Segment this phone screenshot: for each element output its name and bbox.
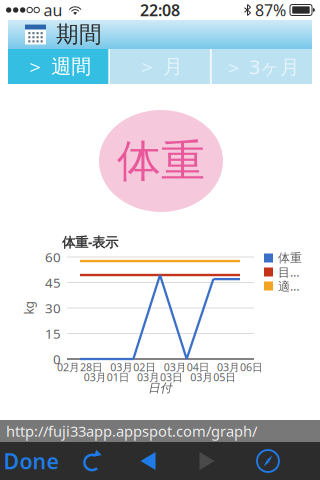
staticText: 03月03日 xyxy=(137,370,183,384)
staticText: 目… xyxy=(278,264,299,280)
staticText: 03月05日 xyxy=(190,370,236,384)
button[interactable]: Back xyxy=(125,442,171,480)
staticText: 87% xyxy=(255,0,286,21)
staticText: 03月04日 xyxy=(164,360,210,374)
button[interactable]: ＞ 週間 xyxy=(8,49,108,84)
staticText: 体重 xyxy=(117,134,205,188)
staticText: 02月28日 xyxy=(57,360,103,374)
staticText: http://fuji33app.appspot.com/graph/ xyxy=(6,421,257,441)
button[interactable]: Reload xyxy=(69,442,115,480)
button[interactable]: Forward xyxy=(184,442,230,480)
staticText: Done xyxy=(3,447,58,475)
button[interactable]: Done xyxy=(1,442,61,480)
staticText: 03月06日 xyxy=(217,360,263,374)
staticText: 45 xyxy=(45,274,61,291)
staticText: 60 xyxy=(45,248,61,266)
staticText: 03月02日 xyxy=(110,360,156,374)
staticText: ＞ 週間 xyxy=(25,54,91,79)
staticText: 22:08 xyxy=(140,0,180,21)
button[interactable]: ＞ 月 xyxy=(110,49,210,84)
staticText: 03月01日 xyxy=(84,370,130,384)
staticText: 0 xyxy=(53,350,61,368)
button[interactable]: Open in Safari xyxy=(245,442,291,480)
staticText: kg xyxy=(22,300,35,316)
staticText: ＞ 月 xyxy=(137,54,183,79)
staticText: au xyxy=(43,0,62,21)
staticText: ＞ 3ヶ月 xyxy=(224,53,300,80)
staticText: 適… xyxy=(278,278,299,294)
staticText: 15 xyxy=(45,325,61,342)
staticText: 体重-表示 xyxy=(62,233,118,251)
staticText: 体重 xyxy=(278,251,302,265)
staticText: 期間 xyxy=(56,21,102,48)
button[interactable]: ＞ 3ヶ月 xyxy=(212,49,312,84)
staticText: 日付 xyxy=(148,381,172,395)
staticText: 30 xyxy=(45,299,61,317)
